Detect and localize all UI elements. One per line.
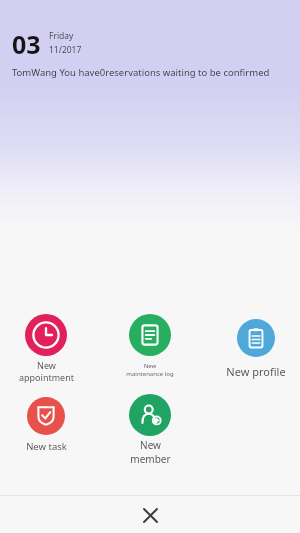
staticText: New appointment xyxy=(19,359,74,383)
button[interactable]: New maintenance log xyxy=(104,310,196,378)
button[interactable]: New task xyxy=(0,393,92,453)
staticText: New task xyxy=(26,440,67,453)
button[interactable]: New member xyxy=(104,390,196,466)
button[interactable]: New appointment xyxy=(0,310,92,383)
staticText: 11/2017 xyxy=(49,44,82,56)
staticText: New member xyxy=(130,438,171,466)
button[interactable]: New profile xyxy=(210,315,300,379)
staticText: Friday xyxy=(49,30,74,42)
staticText: 03 xyxy=(12,27,41,61)
button[interactable]: Close xyxy=(132,497,168,533)
staticText: New maintenance log xyxy=(126,362,174,378)
staticText: New profile xyxy=(226,364,286,379)
staticText: TomWang You have0reservations waiting to… xyxy=(12,66,270,79)
